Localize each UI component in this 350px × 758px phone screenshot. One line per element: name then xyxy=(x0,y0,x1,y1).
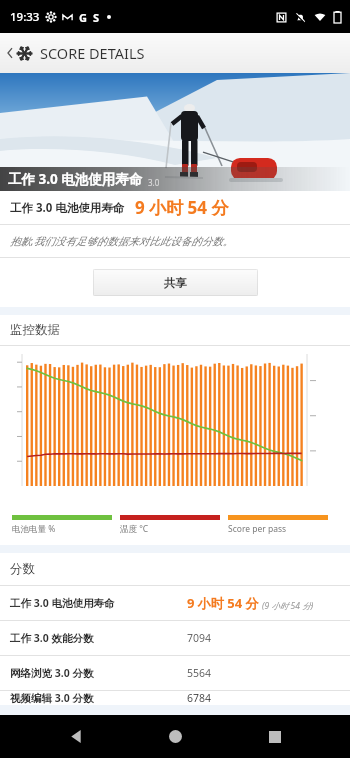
staticText: 工作 3.0 电池使用寿命 xyxy=(8,170,143,188)
button[interactable]: Recents xyxy=(251,715,299,758)
staticText: 电池电量 % xyxy=(12,523,56,535)
staticText: 工作 3.0 效能分数 xyxy=(10,631,94,645)
staticText: G xyxy=(79,10,87,25)
staticText: 19:33 xyxy=(10,9,40,25)
button[interactable]: Home xyxy=(151,715,199,758)
staticText: 5564 xyxy=(187,666,212,680)
staticText: 视频编辑 3.0 分数 xyxy=(10,691,94,705)
staticText: 温度 °C xyxy=(120,523,149,535)
staticText: 共享 xyxy=(164,276,187,290)
staticText: 6784 xyxy=(187,691,212,705)
button[interactable]: 工作 3.0 效能分数 xyxy=(0,621,350,655)
staticText: 工作 3.0 电池使用寿命 xyxy=(10,596,115,610)
staticText: 网络浏览 3.0 分数 xyxy=(10,666,94,680)
staticText: 抱歉,我们没有足够的数据来对比此设备的分数。 xyxy=(10,234,234,248)
staticText: SCORE DETAILS xyxy=(40,43,145,63)
staticText: (9 小时 54 分) xyxy=(262,600,314,612)
staticText: 7094 xyxy=(187,631,212,645)
button[interactable]: 工作 3.0 电池使用寿命 xyxy=(0,586,350,620)
staticText: 工作 3.0 电池使用寿命 xyxy=(10,200,125,216)
staticText: 3.0 xyxy=(148,177,160,188)
button[interactable]: 网络浏览 3.0 分数 xyxy=(0,656,350,690)
staticText: 监控数据 xyxy=(10,322,60,338)
staticText: 9 小时 54 分 xyxy=(135,196,229,219)
button[interactable]: 共享 xyxy=(93,269,258,296)
button[interactable]: 视频编辑 3.0 分数 xyxy=(0,691,350,705)
staticText: Score per pass xyxy=(228,523,287,535)
button[interactable]: Back xyxy=(52,715,100,758)
button[interactable]: Back xyxy=(3,39,148,67)
staticText: S xyxy=(93,10,100,25)
staticText: 分数 xyxy=(10,561,35,577)
staticText: 9 小时 54 分 xyxy=(187,594,259,612)
